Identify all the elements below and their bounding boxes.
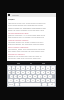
button[interactable]: W <box>12 71 15 74</box>
staticText: ?12 <box>9 83 13 86</box>
staticText: F <box>24 75 26 78</box>
button[interactable]: M <box>46 79 50 82</box>
button[interactable]: . <box>42 83 47 86</box>
button[interactable]: Q <box>8 71 11 74</box>
staticText: P <box>52 71 54 74</box>
staticText: Kotlin Weekly Newsletter <box>8 46 29 48</box>
button[interactable]: X <box>20 79 25 82</box>
button[interactable]: Suggestions <box>7 61 56 65</box>
button[interactable]: J <box>38 75 42 78</box>
staticText: U <box>37 71 39 74</box>
staticText: ^ <box>10 79 12 82</box>
staticText: A <box>11 75 13 78</box>
button[interactable]: V <box>31 79 35 82</box>
button[interactable]: 6 <box>31 66 35 70</box>
staticText: to <box>30 62 32 64</box>
button[interactable]: ^ <box>8 79 13 82</box>
button[interactable]: 5 <box>26 66 30 70</box>
button[interactable]: ⏎ <box>48 83 55 86</box>
button[interactable]: G <box>28 75 32 78</box>
button[interactable]: Y <box>31 71 35 74</box>
staticText: new features and a number of bug fixes t… <box>8 36 44 38</box>
staticText: C <box>27 79 29 82</box>
staticText: ⏎ <box>51 83 53 86</box>
staticText: 0 <box>52 67 54 70</box>
button[interactable]: , <box>15 83 19 86</box>
button[interactable]: P <box>51 71 55 74</box>
staticText: Weekly digest for developers everywhere … <box>8 27 46 29</box>
staticText: 4 <box>22 67 24 70</box>
button[interactable]: C <box>26 79 30 82</box>
button[interactable]: < <box>51 79 55 82</box>
button[interactable]: 7 <box>36 66 40 70</box>
button[interactable]: A <box>10 75 13 78</box>
button[interactable]: 9 <box>46 66 50 70</box>
staticText: X <box>22 79 24 82</box>
button[interactable]: S <box>14 75 17 78</box>
button[interactable]: B <box>36 79 40 82</box>
button[interactable]: ?12 <box>8 83 14 86</box>
staticText: foldable devices are available starting … <box>8 43 44 45</box>
staticText: 5 <box>27 67 29 70</box>
staticText: with news from around the community here <box>8 50 45 52</box>
staticText: 1 <box>9 67 11 70</box>
staticText: Android Developers Blog <box>8 32 29 34</box>
button[interactable]: N <box>41 79 45 82</box>
staticText: the <box>17 62 20 64</box>
staticText: Adaptive layouts for large screens and a… <box>8 41 44 43</box>
button[interactable]: H <box>33 75 37 78</box>
button[interactable]: 8 <box>41 66 45 70</box>
staticText: 8 <box>42 67 44 70</box>
staticText: M <box>47 79 49 82</box>
button[interactable]: 0 <box>51 66 55 70</box>
staticText: Sessions you should not miss this year i… <box>8 55 42 57</box>
staticText: Mountain View plus online for everyone <box>8 57 41 59</box>
staticText: Jetpack Compose 1.7 is now stable with m… <box>8 34 46 36</box>
button[interactable]: L <box>48 75 52 78</box>
button[interactable]: 4 <box>21 66 25 70</box>
staticText: O <box>47 71 49 74</box>
staticText: B <box>37 79 39 82</box>
button[interactable]: K <box>43 75 47 78</box>
staticText: , <box>17 83 18 86</box>
staticText: E <box>17 71 19 74</box>
staticText: D <box>19 75 21 78</box>
button[interactable]: D <box>18 75 22 78</box>
button[interactable]: E <box>16 71 20 74</box>
staticText: 9 <box>47 67 49 70</box>
button[interactable]: 2 <box>12 66 15 70</box>
staticText: W <box>12 71 15 74</box>
staticText: Z <box>16 79 18 82</box>
staticText: H <box>34 75 36 78</box>
button[interactable] <box>20 83 41 86</box>
staticText: 7 <box>37 67 39 70</box>
button[interactable]: U <box>36 71 40 74</box>
button[interactable]: F <box>23 75 27 78</box>
staticText: S <box>15 75 17 78</box>
staticText: I <box>43 71 44 74</box>
staticText: Inbox <box>8 18 15 21</box>
staticText: Google I/O Sessions <box>8 53 25 55</box>
button[interactable]: R <box>21 71 25 74</box>
staticText: G <box>29 75 31 78</box>
button[interactable]: Toolbar <box>7 13 56 17</box>
button[interactable]: T <box>26 71 30 74</box>
staticText: K <box>44 75 46 78</box>
staticText: 2 <box>13 67 15 70</box>
button[interactable]: Z <box>14 79 19 82</box>
staticText: Y <box>32 71 34 74</box>
button[interactable]: 1 <box>8 66 11 70</box>
staticText: Q <box>9 71 11 74</box>
staticText: Message <box>12 14 19 16</box>
button[interactable]: I <box>41 71 45 74</box>
staticText: New items from your subscriptions today … <box>8 22 46 24</box>
staticText: R <box>22 71 24 74</box>
staticText: Material Design Updates <box>8 39 29 41</box>
button[interactable]: 3 <box>16 66 20 70</box>
staticText: L <box>49 75 51 78</box>
staticText: J <box>40 75 41 78</box>
button[interactable]: O <box>46 71 50 74</box>
staticText: Coroutines, flows and multiplatform libr… <box>8 48 45 50</box>
